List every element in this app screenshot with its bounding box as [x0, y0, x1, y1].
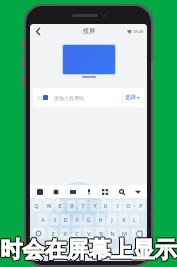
button[interactable]: Y — [90, 200, 99, 211]
button[interactable]: E — [55, 200, 64, 211]
button[interactable]: Shift — [32, 228, 45, 239]
staticText: A — [41, 216, 45, 223]
staticText: Q — [34, 202, 39, 209]
button[interactable]: P — [136, 200, 145, 211]
button[interactable]: C — [72, 228, 81, 239]
staticText: R — [70, 202, 74, 209]
staticText: 时会在屏幕上显示投屏 — [0, 237, 176, 265]
staticText: 123 — [51, 252, 59, 258]
button[interactable]: M — [120, 228, 129, 239]
button[interactable]: 123 — [47, 249, 63, 260]
button[interactable]: Emoji — [50, 186, 61, 197]
staticText: N — [110, 230, 115, 237]
staticText: 时会在屏幕上显示投屏 — [1, 237, 177, 265]
button[interactable]: A — [38, 214, 47, 225]
staticText: . — [115, 252, 117, 258]
staticText: 时会在屏幕上显示投屏 — [1, 235, 177, 263]
button[interactable]: Keyboard switch — [34, 186, 45, 197]
button[interactable]: Q — [32, 200, 41, 211]
button[interactable]: Space — [81, 249, 107, 260]
staticText: W — [46, 202, 52, 209]
staticText: V — [87, 230, 91, 237]
button[interactable]: Sticker — [67, 186, 78, 197]
staticText: Y — [93, 202, 97, 209]
staticText: 时会在屏幕上显示投屏 — [0, 236, 177, 264]
button[interactable]: G — [84, 214, 93, 225]
staticText: 时会在屏幕上显示投屏 — [0, 235, 177, 263]
button[interactable]: V — [84, 228, 93, 239]
button[interactable]: T — [78, 200, 87, 211]
button[interactable]: R — [67, 200, 76, 211]
staticText: D — [63, 216, 68, 223]
button[interactable]: Z — [48, 228, 57, 239]
button[interactable]: N — [108, 228, 117, 239]
button[interactable]: F — [73, 214, 82, 225]
staticText: P — [139, 202, 143, 209]
button[interactable]: Back — [33, 26, 44, 37]
staticText: S — [53, 216, 57, 223]
staticText: G — [86, 216, 91, 223]
staticText: 时会在屏幕上显示投屏 — [0, 237, 177, 265]
staticText: 时会在屏幕上显示投屏 — [1, 236, 177, 264]
staticText: 时会在屏幕上显示投屏 — [0, 235, 176, 263]
button[interactable]: 换行 — [125, 249, 145, 260]
button[interactable]: W — [44, 200, 53, 211]
button[interactable]: O — [124, 200, 133, 211]
button[interactable]: U — [101, 200, 110, 211]
staticText: 选择 — [125, 94, 136, 101]
staticText: C — [75, 230, 79, 237]
staticText: H — [98, 216, 103, 223]
staticText: 换行 — [131, 252, 139, 257]
button[interactable]: Search — [116, 186, 127, 197]
button[interactable]: H — [96, 214, 105, 225]
button[interactable]: J — [107, 214, 116, 225]
staticText: O — [126, 202, 131, 209]
staticText: I — [117, 202, 119, 209]
staticText: Z — [51, 230, 55, 237]
button[interactable]: S — [50, 214, 59, 225]
staticText: 投屏 — [83, 27, 95, 35]
button[interactable]: Delete — [132, 228, 145, 239]
staticText: L — [133, 216, 136, 223]
button[interactable]: X — [60, 228, 69, 239]
staticText: J — [111, 216, 113, 223]
button[interactable]: I — [113, 200, 122, 211]
staticText: F — [76, 216, 79, 223]
staticText: 18:28 — [133, 29, 144, 34]
staticText: B — [99, 230, 103, 237]
button[interactable]: L — [130, 214, 139, 225]
staticText: U — [103, 202, 108, 209]
staticText: 请输入投屏码 — [54, 95, 84, 101]
staticText: K — [122, 216, 126, 223]
staticText: 时会在屏幕上显示投屏 — [0, 236, 176, 264]
button[interactable]: , — [65, 249, 79, 260]
staticText: E — [58, 202, 62, 209]
button[interactable]: D — [61, 214, 70, 225]
staticText: T — [81, 202, 85, 209]
staticText: M — [122, 230, 127, 237]
button[interactable]: Voice input — [83, 186, 94, 197]
staticText: 符 — [36, 252, 41, 258]
staticText: , — [71, 252, 73, 258]
button[interactable]: B — [96, 228, 105, 239]
button[interactable]: 选择 — [120, 88, 140, 107]
button[interactable]: Collapse — [132, 186, 143, 197]
button[interactable]: 符 — [32, 249, 45, 260]
button[interactable]: . — [109, 249, 123, 260]
button[interactable]: Grid — [99, 186, 110, 197]
staticText: X — [63, 230, 67, 237]
button[interactable]: K — [119, 214, 128, 225]
